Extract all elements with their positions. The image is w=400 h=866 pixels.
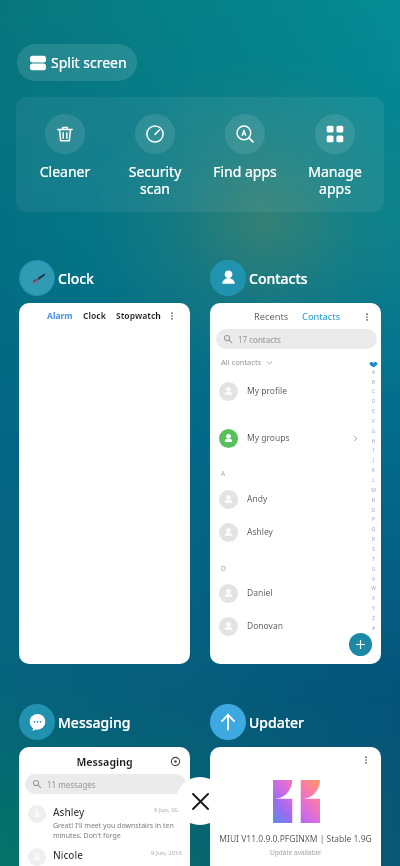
button[interactable]: Alarm — [19, 303, 190, 664]
staticText: I — [369, 447, 378, 454]
button[interactable]: Add contact — [349, 633, 372, 656]
staticText: A — [369, 369, 378, 376]
button[interactable]: Ashley — [19, 805, 190, 841]
staticText: T — [369, 556, 378, 563]
button[interactable]: Messaging — [19, 747, 190, 866]
staticText: A — [221, 469, 226, 478]
button[interactable]: My profile — [210, 381, 381, 401]
staticText: N — [369, 497, 378, 504]
staticText: Ashley — [247, 526, 273, 538]
staticText: My groups — [247, 432, 290, 444]
staticText: Updater — [249, 713, 305, 732]
staticText: My profile — [247, 385, 288, 397]
button[interactable]: More options — [359, 753, 373, 767]
staticText: All contacts — [221, 357, 262, 367]
staticText: 17 contacts — [238, 334, 281, 345]
staticText: W — [369, 585, 378, 592]
button[interactable]: Updater — [210, 704, 381, 740]
staticText: Nicole — [53, 848, 83, 862]
button[interactable]: Security scan — [114, 114, 196, 198]
staticText: Alarm — [47, 310, 73, 322]
staticText: R — [369, 536, 378, 543]
button[interactable]: More options — [210, 747, 381, 866]
button[interactable]: All contacts — [221, 357, 273, 367]
staticText: P — [369, 516, 378, 523]
staticText: O — [369, 507, 378, 514]
button[interactable]: Manage apps — [294, 114, 376, 198]
staticText: Contacts — [302, 310, 341, 323]
staticText: Great! I'll meet you downstairs in ten m… — [53, 821, 174, 841]
button[interactable]: Andy — [210, 489, 381, 509]
staticText: Recents — [254, 310, 289, 323]
staticText: U — [369, 566, 378, 573]
button[interactable]: 17 contacts — [216, 329, 377, 349]
button[interactable]: Find apps — [204, 114, 286, 181]
button[interactable]: Clock — [19, 260, 190, 296]
button[interactable]: Settings — [169, 755, 181, 767]
staticText: Update available — [210, 848, 381, 857]
staticText: Messaging — [58, 713, 131, 732]
staticText: MIUI V11.0.9.0.PFGINXM | Stable 1.9G — [210, 833, 381, 845]
button[interactable]: Donovan — [210, 616, 381, 636]
staticText: Clock — [58, 269, 94, 288]
button[interactable]: Daniel — [210, 583, 381, 603]
staticText: J — [369, 457, 378, 464]
staticText: Clock — [83, 310, 106, 322]
staticText: Cleaner — [24, 162, 106, 181]
button[interactable]: Nicole — [19, 848, 190, 866]
staticText: # — [369, 625, 378, 632]
staticText: Donovan — [247, 620, 283, 632]
staticText: 9 Jun, 2016 — [151, 849, 182, 857]
button[interactable]: Contacts — [210, 260, 381, 296]
staticText: K — [369, 467, 378, 474]
staticText: D — [221, 564, 226, 573]
button[interactable]: My groups — [210, 428, 381, 448]
button[interactable]: 11 messages — [25, 774, 186, 794]
staticText: E — [369, 408, 378, 415]
staticText: L — [369, 477, 378, 484]
button[interactable]: Messaging — [19, 704, 190, 740]
staticText: D — [369, 398, 378, 405]
staticText: X — [369, 595, 378, 602]
staticText: V — [369, 576, 378, 583]
staticText: F — [369, 418, 378, 425]
staticText: Messaging — [19, 755, 190, 769]
button[interactable]: Close all — [176, 777, 224, 825]
staticText: G — [369, 428, 378, 435]
staticText: Y — [369, 605, 378, 612]
button[interactable]: Split screen — [17, 44, 137, 81]
staticText: H — [369, 438, 378, 445]
staticText: Manage apps — [294, 162, 376, 198]
staticText: Security scan — [114, 162, 196, 198]
staticText: Z — [369, 615, 378, 622]
staticText: Stopwatch — [116, 310, 161, 322]
button[interactable]: Cleaner — [24, 114, 106, 181]
staticText: 11 messages — [47, 779, 96, 790]
staticText: Split screen — [51, 53, 127, 72]
staticText: Find apps — [204, 162, 286, 181]
staticText: Daniel — [247, 587, 273, 599]
staticText: 9 Jun, 201 — [154, 806, 182, 814]
button[interactable]: Ashley — [210, 522, 381, 542]
staticText: Q — [369, 526, 378, 533]
staticText: B — [369, 379, 378, 386]
button[interactable]: Recents — [210, 303, 381, 664]
staticText: C — [369, 388, 378, 395]
staticText: Contacts — [249, 269, 308, 288]
staticText: Andy — [247, 493, 268, 505]
staticText: Ashley — [53, 805, 85, 819]
staticText: M — [369, 487, 378, 494]
staticText: S — [369, 546, 378, 553]
